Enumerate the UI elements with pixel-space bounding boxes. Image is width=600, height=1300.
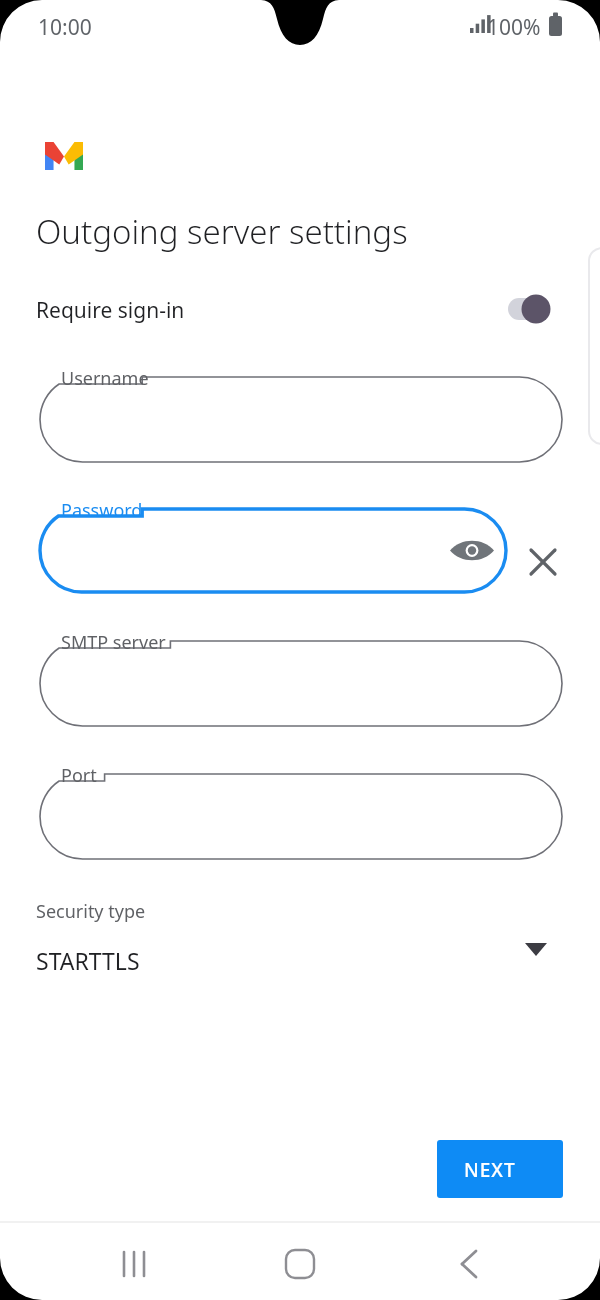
button[interactable]: Require sign-in toggle	[36, 288, 556, 334]
button[interactable]: Show password	[446, 527, 498, 577]
staticText: Port	[61, 763, 97, 788]
button[interactable]: Back	[444, 1240, 500, 1288]
button[interactable]: Password field	[40, 509, 506, 593]
staticText: Require sign-in	[36, 296, 185, 325]
staticText: Outgoing server settings	[36, 209, 408, 254]
staticText: Password	[61, 498, 143, 523]
button[interactable]: Security type STARTTLS	[36, 930, 556, 984]
staticText: Username	[61, 366, 149, 391]
button[interactable]: Recent apps	[100, 1240, 160, 1288]
staticText: 10:00	[38, 13, 92, 42]
staticText: Security type	[36, 899, 146, 924]
button[interactable]: Clear password	[518, 537, 568, 587]
button[interactable]: NEXT	[437, 1140, 563, 1198]
staticText: STARTTLS	[36, 945, 140, 976]
button[interactable]: Username field	[40, 377, 562, 463]
staticText: SMTP server	[61, 630, 166, 655]
button[interactable]: Home	[272, 1240, 328, 1288]
button[interactable]: SMTP server field	[40, 641, 562, 727]
button[interactable]: Port field	[40, 774, 562, 860]
staticText: 100%	[487, 13, 541, 42]
staticText: NEXT	[464, 1157, 516, 1183]
